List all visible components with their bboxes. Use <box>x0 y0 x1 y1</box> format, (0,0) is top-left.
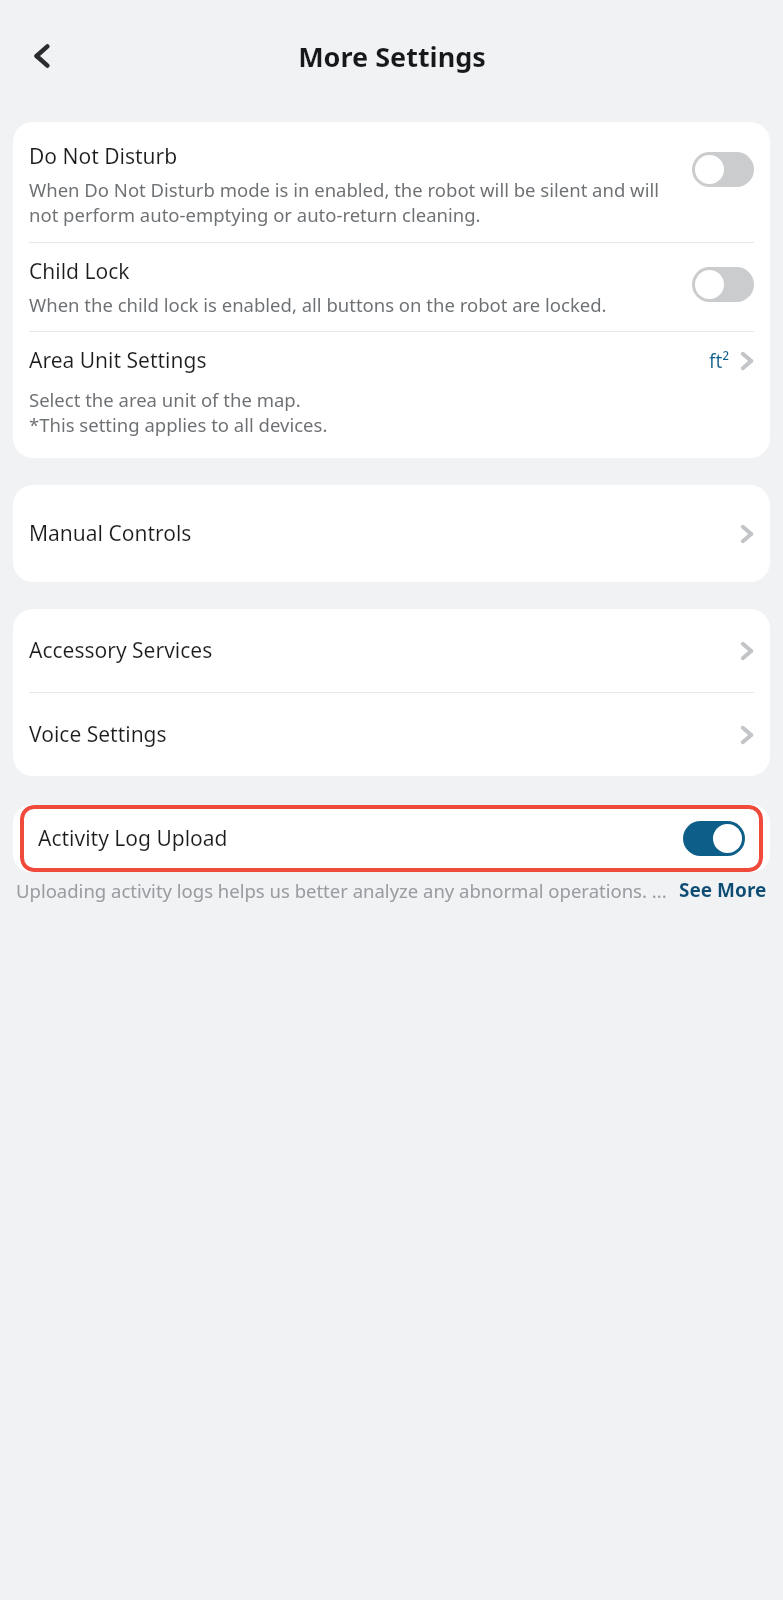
button[interactable]: Manual Controls <box>13 485 770 582</box>
staticText: Manual Controls <box>29 519 740 548</box>
staticText: Child Lock <box>29 257 130 286</box>
staticText: Select the area unit of the map. *This s… <box>29 387 328 438</box>
button[interactable] <box>692 267 754 302</box>
button[interactable]: Back <box>14 28 70 84</box>
staticText: Do Not Disturb <box>29 142 178 171</box>
staticText: Accessory Services <box>29 636 740 665</box>
staticText: Voice Settings <box>29 720 740 749</box>
button[interactable]: See More <box>679 877 767 903</box>
button[interactable]: Voice Settings <box>13 693 770 776</box>
staticText: When Do Not Disturb mode is in enabled, … <box>29 177 680 228</box>
staticText: See More <box>679 877 767 903</box>
staticText: Area Unit Settings <box>29 346 709 375</box>
button[interactable] <box>692 152 754 187</box>
staticText: Uploading activity logs helps us better … <box>16 878 671 903</box>
button[interactable]: Child Lock <box>13 243 770 331</box>
staticText: ft² <box>709 348 730 374</box>
button[interactable]: Activity Log Upload <box>24 809 759 868</box>
staticText: Activity Log Upload <box>38 824 683 853</box>
button[interactable]: Area Unit Settings <box>13 332 770 452</box>
button[interactable]: Do Not Disturb <box>13 128 770 242</box>
button[interactable] <box>683 821 745 856</box>
button[interactable]: Accessory Services <box>13 609 770 692</box>
staticText: When the child lock is enabled, all butt… <box>29 292 607 317</box>
staticText: More Settings <box>298 38 486 75</box>
